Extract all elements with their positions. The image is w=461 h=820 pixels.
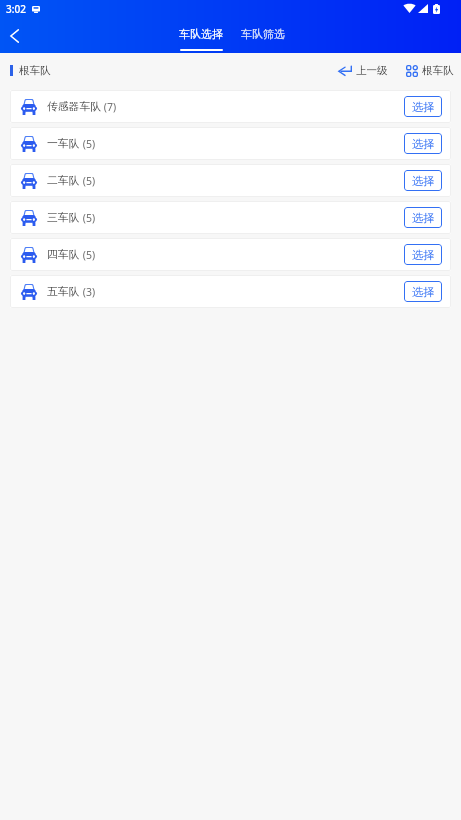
button[interactable]: 车队筛选 xyxy=(240,27,286,51)
staticText: 四车队 xyxy=(47,248,80,262)
staticText: 选择 xyxy=(412,248,435,262)
button[interactable]: 选择 xyxy=(404,133,442,154)
button[interactable]: 选择 xyxy=(404,281,442,302)
staticText: 选择 xyxy=(412,174,435,188)
staticText: (5) xyxy=(80,137,96,151)
staticText: 二车队 xyxy=(47,174,80,188)
button[interactable]: 二车队 xyxy=(10,164,451,197)
button[interactable]: 传感器车队 xyxy=(10,90,451,123)
staticText: 上一级 xyxy=(356,64,388,77)
staticText: 三车队 xyxy=(47,211,80,225)
button[interactable]: 一车队 xyxy=(10,127,451,160)
button[interactable]: Back xyxy=(0,22,28,50)
staticText: (5) xyxy=(80,248,96,262)
button[interactable]: 选择 xyxy=(404,244,442,265)
button[interactable]: 四车队 xyxy=(10,238,451,271)
staticText: 3:02 xyxy=(6,2,26,16)
staticText: 选择 xyxy=(412,137,435,151)
staticText: (5) xyxy=(80,211,96,225)
button[interactable]: 上一级 xyxy=(338,64,388,77)
staticText: 选择 xyxy=(412,100,435,114)
staticText: 车队筛选 xyxy=(241,27,285,41)
button[interactable]: 选择 xyxy=(404,207,442,228)
staticText: 选择 xyxy=(412,285,435,299)
staticText: 一车队 xyxy=(47,137,80,151)
staticText: 选择 xyxy=(412,211,435,225)
button[interactable]: 选择 xyxy=(404,170,442,191)
staticText: 传感器车队 xyxy=(47,100,101,114)
staticText: (3) xyxy=(80,285,96,299)
button[interactable]: 三车队 xyxy=(10,201,451,234)
staticText: 根车队 xyxy=(422,64,454,77)
staticText: (5) xyxy=(80,174,96,188)
staticText: 五车队 xyxy=(47,285,80,299)
button[interactable]: 根车队 xyxy=(406,64,454,77)
button[interactable]: 五车队 xyxy=(10,275,451,308)
staticText: 车队选择 xyxy=(179,27,223,41)
button[interactable]: 选择 xyxy=(404,96,442,117)
staticText: 根车队 xyxy=(19,64,51,77)
staticText: (7) xyxy=(101,100,117,114)
button[interactable]: 车队选择 xyxy=(178,27,224,51)
